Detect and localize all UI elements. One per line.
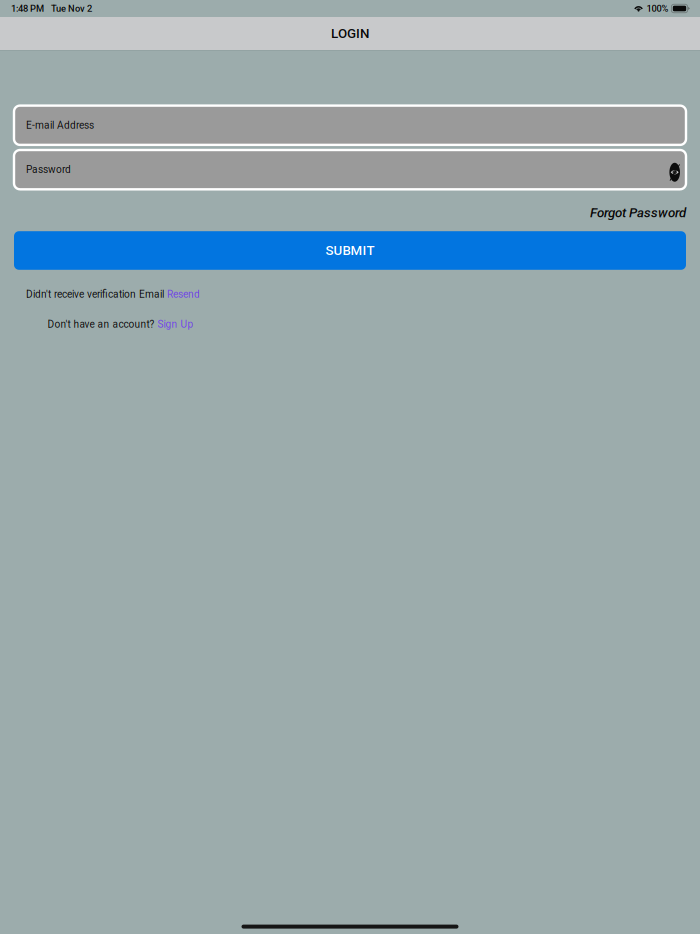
staticText: Didn't receive verification Email	[26, 288, 167, 300]
staticText: Resend	[167, 288, 200, 300]
staticText: 1:48 PM	[11, 3, 44, 14]
staticText: Don't have an account?	[47, 318, 157, 330]
staticText: SUBMIT	[325, 243, 374, 258]
staticText: LOGIN	[331, 26, 369, 41]
staticText: Sign Up	[157, 318, 193, 330]
button[interactable]: Resend	[167, 288, 200, 300]
staticText: Password	[26, 164, 71, 176]
button[interactable]: Sign Up	[157, 318, 193, 330]
button[interactable]: SUBMIT	[14, 231, 686, 270]
staticText: Tue Nov 2	[51, 3, 92, 14]
staticText: Forgot Password	[590, 205, 686, 221]
staticText: 100%	[646, 3, 668, 14]
staticText: E-mail Address	[26, 119, 94, 131]
button[interactable]: Forgot Password	[590, 205, 686, 221]
